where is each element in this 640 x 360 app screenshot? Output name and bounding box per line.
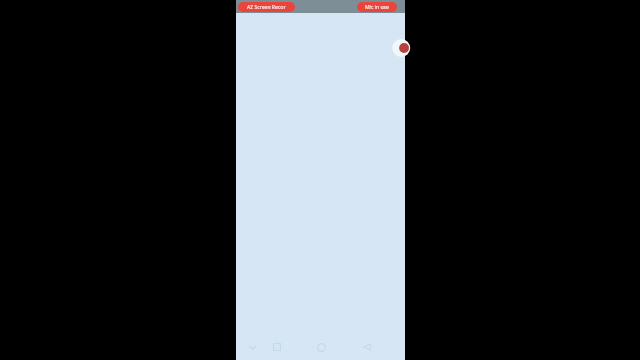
button[interactable]: Screen recorder controls [397,39,411,57]
button[interactable]: Back [358,338,376,356]
button[interactable]: Mic in use [357,2,397,12]
button[interactable]: Hide keyboard [244,339,260,355]
staticText: AZ Screen Recor [247,4,286,11]
button[interactable]: AZ Screen Recor [238,2,295,12]
staticText: Mic in use [365,4,389,11]
button[interactable]: Home [312,338,330,356]
button[interactable]: Recent apps [268,338,286,356]
